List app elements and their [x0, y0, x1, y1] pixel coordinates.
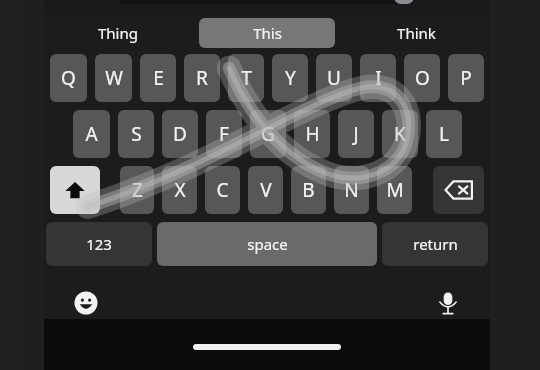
- button[interactable]: Emoji: [66, 287, 106, 319]
- staticText: J: [353, 121, 359, 147]
- staticText: Q: [61, 65, 76, 91]
- staticText: F: [219, 121, 229, 147]
- button[interactable]: E: [140, 54, 176, 102]
- button[interactable]: space: [157, 222, 377, 266]
- staticText: P: [460, 65, 472, 91]
- button[interactable]: O: [404, 54, 440, 102]
- button[interactable]: Backspace: [433, 166, 484, 214]
- staticText: U: [327, 65, 341, 91]
- staticText: 123: [86, 234, 112, 254]
- button[interactable]: Voice input: [428, 287, 468, 319]
- button[interactable]: X: [162, 166, 197, 214]
- staticText: N: [344, 177, 359, 203]
- button[interactable]: T: [228, 54, 264, 102]
- button[interactable]: return: [382, 222, 488, 266]
- button[interactable]: Z: [120, 166, 154, 214]
- staticText: C: [216, 177, 229, 203]
- staticText: S: [131, 121, 142, 147]
- button[interactable]: Think: [348, 18, 484, 48]
- staticText: B: [302, 177, 315, 203]
- button[interactable]: N: [334, 166, 369, 214]
- button[interactable]: J: [338, 110, 374, 158]
- staticText: E: [153, 65, 164, 91]
- staticText: Thing: [98, 23, 138, 43]
- button[interactable]: R: [184, 54, 220, 102]
- button[interactable]: L: [426, 110, 462, 158]
- staticText: return: [413, 234, 458, 254]
- button[interactable]: W: [95, 54, 132, 102]
- staticText: H: [305, 121, 320, 147]
- button[interactable]: C: [205, 166, 240, 214]
- staticText: A: [85, 121, 98, 147]
- staticText: R: [196, 65, 208, 91]
- staticText: G: [261, 121, 275, 147]
- button[interactable]: Q: [50, 54, 87, 102]
- staticText: I: [375, 65, 382, 91]
- staticText: T: [241, 65, 252, 91]
- staticText: X: [174, 177, 186, 203]
- staticText: Z: [132, 177, 143, 203]
- button[interactable]: M: [377, 166, 412, 214]
- button[interactable]: U: [316, 54, 352, 102]
- button[interactable]: Send: [394, 0, 414, 4]
- button[interactable]: P: [448, 54, 484, 102]
- button[interactable]: D: [162, 110, 198, 158]
- staticText: O: [415, 65, 430, 91]
- button[interactable]: Shift: [50, 166, 100, 214]
- button[interactable]: A: [73, 110, 110, 158]
- button[interactable]: I: [360, 54, 396, 102]
- staticText: L: [439, 121, 449, 147]
- button[interactable]: G: [250, 110, 286, 158]
- button[interactable]: Thing: [50, 18, 186, 48]
- button[interactable]: This: [199, 18, 335, 48]
- button[interactable]: S: [118, 110, 154, 158]
- button[interactable]: F: [206, 110, 242, 158]
- staticText: M: [386, 177, 404, 203]
- staticText: V: [260, 177, 272, 203]
- button[interactable]: V: [248, 166, 283, 214]
- button[interactable]: Y: [272, 54, 308, 102]
- staticText: D: [173, 121, 187, 147]
- staticText: W: [105, 65, 123, 91]
- staticText: Y: [285, 65, 296, 91]
- staticText: Think: [397, 23, 436, 43]
- staticText: This: [253, 23, 282, 43]
- button[interactable]: K: [382, 110, 418, 158]
- button[interactable]: 123: [46, 222, 152, 266]
- button[interactable]: H: [294, 110, 330, 158]
- button[interactable]: B: [291, 166, 326, 214]
- staticText: space: [247, 234, 288, 254]
- button[interactable]: Send: [117, 0, 417, 4]
- staticText: K: [394, 121, 406, 147]
